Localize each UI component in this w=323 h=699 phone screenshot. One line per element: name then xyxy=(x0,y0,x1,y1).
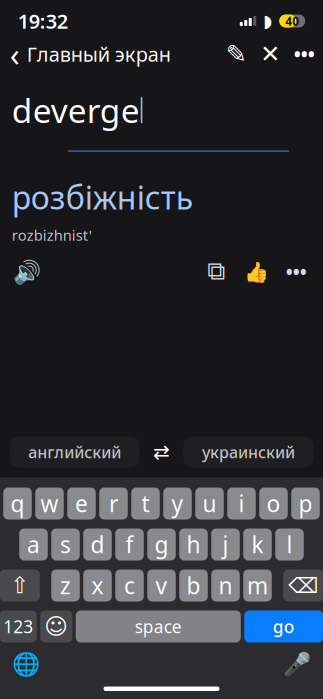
button[interactable]: g xyxy=(147,528,176,560)
staticText: 123 xyxy=(3,615,33,638)
staticText: u xyxy=(202,488,216,518)
button[interactable]: t xyxy=(131,487,160,519)
button[interactable]: j xyxy=(211,528,240,560)
staticText: g xyxy=(154,529,168,559)
button[interactable]: n xyxy=(211,569,240,601)
button[interactable]: y xyxy=(163,487,192,519)
button[interactable]: z xyxy=(51,569,80,601)
staticText: b xyxy=(186,570,200,600)
staticText: украинский xyxy=(202,441,295,463)
button[interactable]: c xyxy=(115,569,144,601)
staticText: l xyxy=(286,529,292,559)
button[interactable]: v xyxy=(147,569,176,601)
button[interactable]: r xyxy=(99,487,128,519)
staticText: ••• xyxy=(286,259,307,284)
staticText: f xyxy=(125,529,133,559)
button[interactable]: h xyxy=(179,528,208,560)
staticText: ✎ xyxy=(226,40,247,68)
staticText: ◗ xyxy=(263,11,272,31)
button[interactable]: английский xyxy=(10,436,140,467)
staticText: h xyxy=(186,529,200,559)
button[interactable]: space xyxy=(76,610,241,642)
staticText: ⧉ xyxy=(207,259,225,284)
button[interactable]: e xyxy=(67,487,96,519)
staticText: 40 xyxy=(285,13,299,29)
staticText: ‹ xyxy=(10,33,20,75)
button[interactable]: k xyxy=(243,528,272,560)
staticText: deverge xyxy=(12,88,140,132)
staticText: m xyxy=(247,570,268,600)
button[interactable]: q xyxy=(3,487,32,519)
staticText: 19:32 xyxy=(18,8,68,34)
button[interactable]: Copy translation xyxy=(197,253,235,291)
button[interactable]: Handwriting input xyxy=(219,37,253,71)
staticText: розбіжність xyxy=(12,176,193,218)
button[interactable]: Close xyxy=(253,37,287,71)
staticText: c xyxy=(124,570,135,600)
button[interactable]: Swap languages xyxy=(139,436,183,467)
staticText: a xyxy=(27,529,40,559)
staticText: t xyxy=(141,488,149,518)
staticText: ••• xyxy=(294,42,315,66)
staticText: 👍 xyxy=(244,260,269,283)
staticText: ⌫ xyxy=(288,573,318,598)
button[interactable]: d xyxy=(83,528,112,560)
button[interactable]: s xyxy=(51,528,80,560)
button[interactable]: o xyxy=(259,487,288,519)
button[interactable]: x xyxy=(83,569,112,601)
staticText: v xyxy=(155,570,167,600)
staticText: английский xyxy=(28,441,121,463)
staticText: 🌐 xyxy=(12,652,40,677)
button[interactable]: Numbers xyxy=(0,610,37,642)
staticText: go xyxy=(273,615,295,638)
staticText: p xyxy=(298,488,312,518)
staticText: Главный экран xyxy=(27,41,171,67)
staticText: 🎤 xyxy=(283,652,311,677)
staticText: ✕ xyxy=(260,40,280,68)
button[interactable]: u xyxy=(195,487,224,519)
button[interactable]: go xyxy=(244,610,323,642)
button[interactable]: Rate this translation xyxy=(235,253,277,291)
button[interactable]: More actions xyxy=(277,253,315,291)
staticText: w xyxy=(40,488,58,518)
staticText: s xyxy=(60,529,71,559)
staticText: o xyxy=(266,488,280,518)
staticText: k xyxy=(251,529,263,559)
staticText: r xyxy=(109,488,118,518)
button[interactable]: m xyxy=(243,569,272,601)
button[interactable]: ‹ xyxy=(2,27,179,81)
staticText: ⇧ xyxy=(10,573,29,598)
staticText: d xyxy=(90,529,104,559)
button[interactable]: w xyxy=(35,487,64,519)
staticText: q xyxy=(10,488,24,518)
button[interactable]: More options xyxy=(287,37,321,71)
staticText: e xyxy=(75,488,88,518)
staticText: x xyxy=(91,570,103,600)
staticText: 🔊 xyxy=(13,259,41,285)
staticText: y xyxy=(171,488,183,518)
button[interactable]: Backspace xyxy=(283,569,323,601)
staticText: space xyxy=(135,615,182,638)
button[interactable]: Listen xyxy=(8,253,46,291)
button[interactable]: украинский xyxy=(183,436,313,467)
button[interactable]: i xyxy=(227,487,256,519)
button[interactable]: a xyxy=(19,528,48,560)
staticText: j xyxy=(222,529,228,559)
button[interactable]: Emoji xyxy=(40,610,72,642)
staticText: z xyxy=(60,570,71,600)
button[interactable]: Change keyboard xyxy=(6,646,46,682)
staticText: rozbizhnist' xyxy=(12,225,92,245)
button[interactable]: p xyxy=(291,487,320,519)
button[interactable]: Shift xyxy=(0,569,40,601)
staticText: ☺ xyxy=(44,614,68,639)
button[interactable]: b xyxy=(179,569,208,601)
staticText: ⇄ xyxy=(153,441,170,463)
button[interactable]: f xyxy=(115,528,144,560)
button[interactable]: l xyxy=(275,528,304,560)
staticText: n xyxy=(218,570,232,600)
button[interactable]: Dictate xyxy=(277,646,317,682)
staticText: i xyxy=(238,488,244,518)
